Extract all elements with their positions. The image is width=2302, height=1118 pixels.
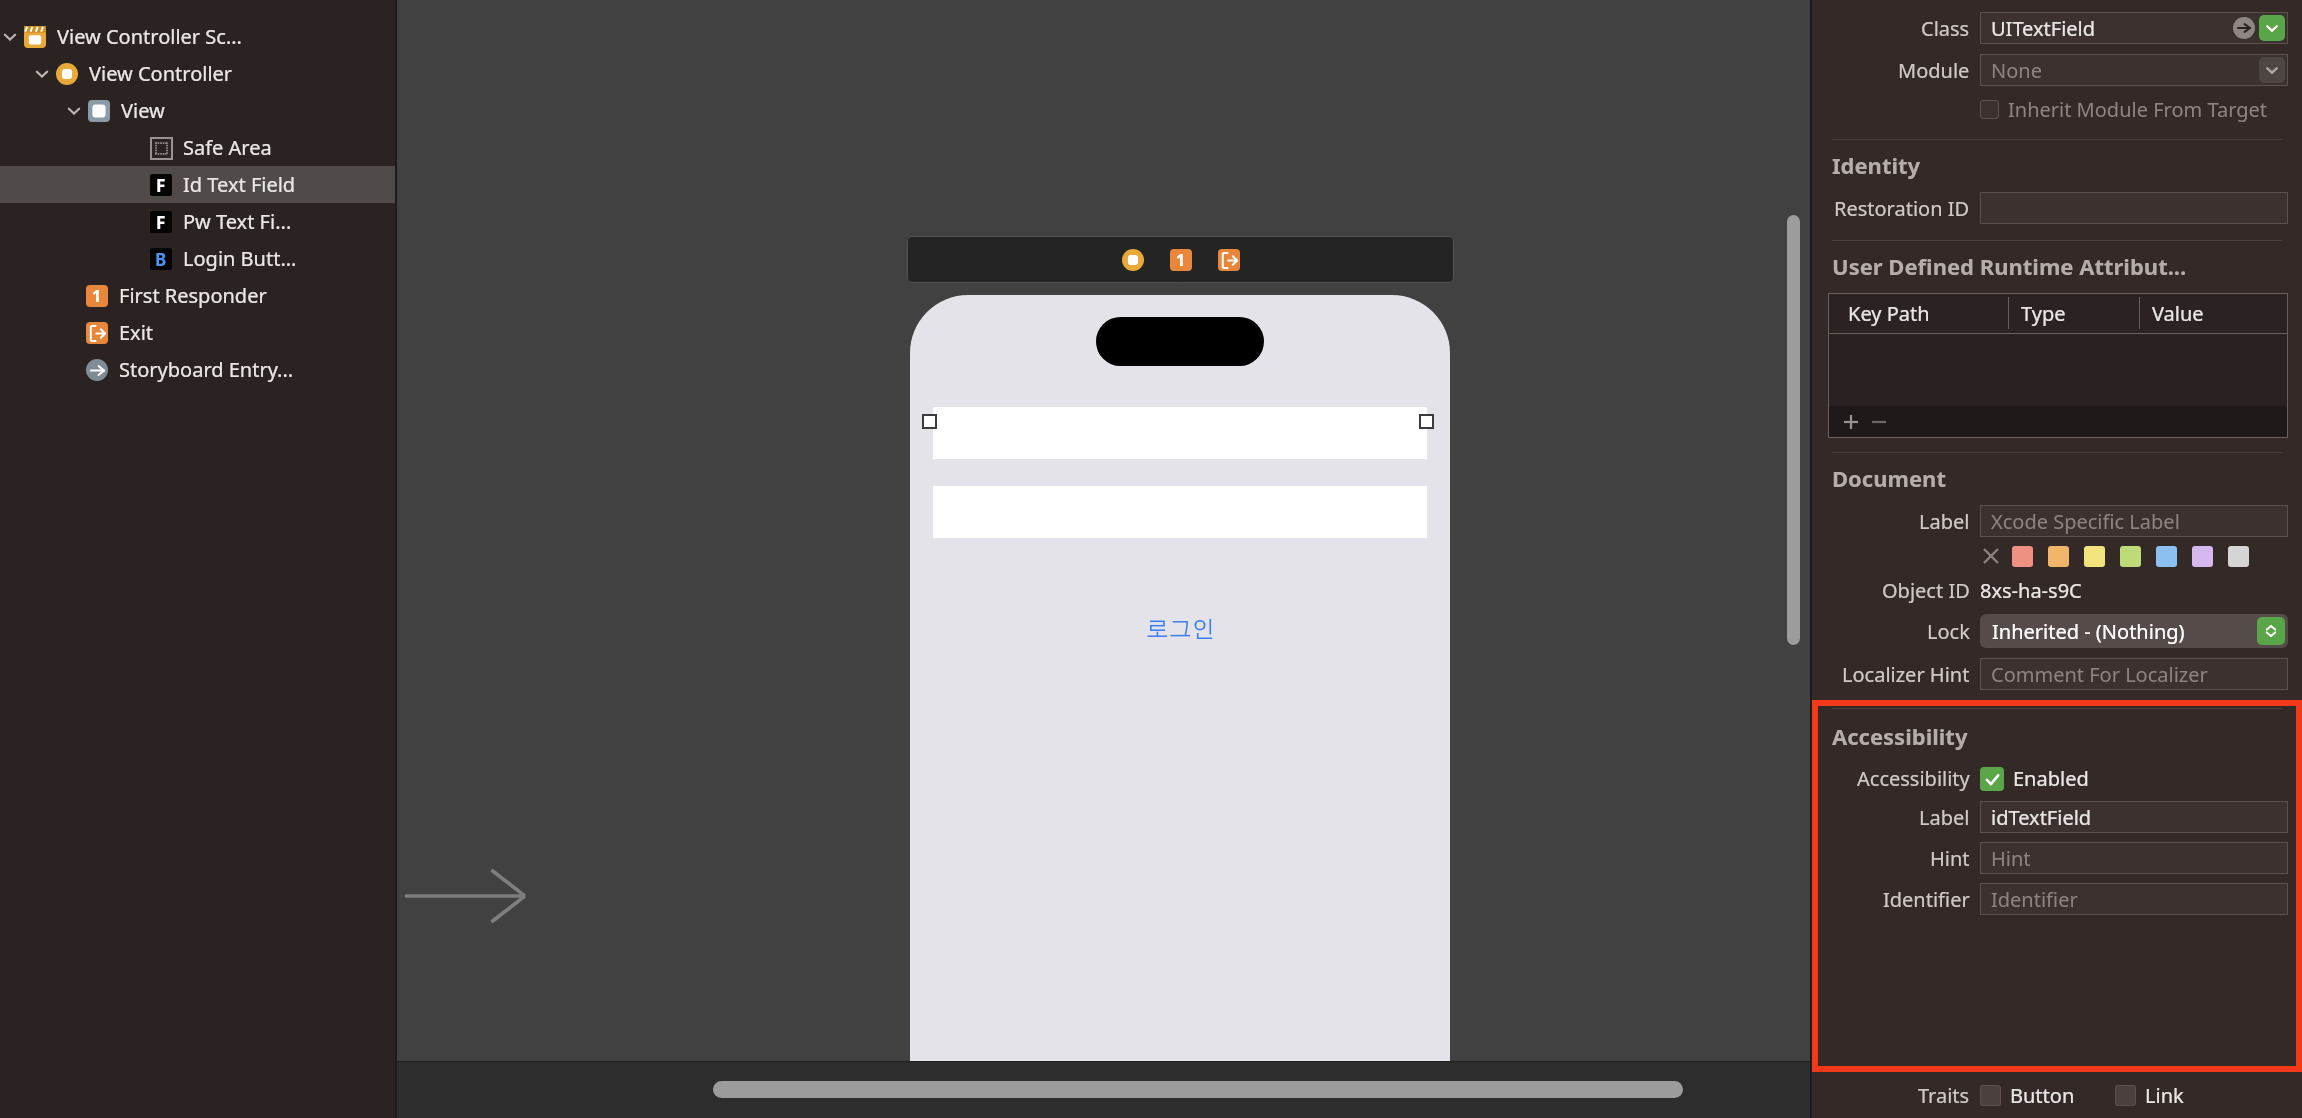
button[interactable]: View Controller	[0, 55, 395, 92]
staticText: Restoration ID	[1834, 195, 1970, 222]
staticText: Hint	[1991, 845, 2031, 872]
button[interactable]: Choose module	[2259, 57, 2285, 83]
button[interactable]: Add attribute	[1840, 411, 1862, 433]
staticText: Class	[1921, 15, 1970, 42]
staticText: View Controller Sc...	[57, 23, 242, 50]
button[interactable]: Link	[2115, 1082, 2184, 1109]
button[interactable]: Inherited - (Nothing)	[1980, 614, 2288, 648]
button[interactable]: Storyboard Entry...	[0, 351, 395, 388]
staticText: Traits	[1918, 1082, 1970, 1109]
staticText: Key Path	[1848, 300, 1930, 327]
staticText: Hint	[1930, 845, 1970, 872]
staticText: 8xs-ha-s9C	[1980, 577, 2082, 604]
staticText: Pw Text Fi...	[183, 208, 292, 235]
staticText: B	[155, 248, 167, 270]
button[interactable]	[2156, 546, 2177, 567]
staticText: Type	[2021, 300, 2066, 327]
button[interactable]: Button	[1980, 1082, 2075, 1109]
button[interactable]: View	[0, 92, 395, 129]
staticText: F	[156, 211, 166, 233]
staticText: Inherited - (Nothing)	[1992, 618, 2185, 645]
button[interactable]: Comment For Localizer	[1980, 658, 2288, 690]
button[interactable]: UITextField	[1980, 12, 2288, 44]
staticText: 1	[92, 285, 102, 307]
staticText: Object ID	[1882, 577, 1970, 604]
button[interactable]: F	[0, 166, 395, 203]
staticText: Identifier	[1991, 886, 2078, 913]
button[interactable]: B	[0, 240, 395, 277]
staticText: UITextField	[1991, 15, 2096, 42]
button[interactable]: F	[0, 203, 395, 240]
button[interactable]: View Controller	[1120, 247, 1146, 273]
button[interactable]: 로그인	[1090, 608, 1270, 648]
staticText: idTextField	[1991, 804, 2092, 831]
staticText: Value	[2152, 300, 2204, 327]
staticText: Localizer Hint	[1842, 661, 1970, 688]
staticText: Button	[2010, 1082, 2075, 1109]
button[interactable]: Identifier	[1980, 883, 2288, 915]
button[interactable]	[933, 407, 1427, 459]
staticText: Storyboard Entry...	[119, 356, 294, 383]
staticText: Module	[1898, 57, 1970, 84]
staticText: Document	[1832, 463, 1946, 493]
staticText: Inherit Module From Target	[2008, 96, 2267, 123]
staticText: Identifier	[1883, 886, 1970, 913]
staticText: 로그인	[1146, 614, 1215, 643]
button[interactable]: Exit	[1216, 247, 1242, 273]
staticText: User Defined Runtime Attribut...	[1832, 251, 2187, 281]
button[interactable]: idTextField	[1980, 801, 2288, 833]
staticText: Accessibility	[1832, 721, 1968, 751]
button[interactable]: 1	[0, 277, 395, 314]
button[interactable]	[1980, 192, 2288, 224]
staticText: Enabled	[2013, 765, 2089, 792]
button[interactable]: No color	[1980, 545, 2002, 567]
button[interactable]: Xcode Specific Label	[1980, 505, 2288, 537]
button[interactable]: Open class	[2233, 17, 2255, 39]
button[interactable]: Choose class	[2259, 15, 2285, 41]
button[interactable]	[1980, 100, 1999, 119]
staticText: View	[121, 97, 165, 124]
staticText: Label	[1919, 508, 1970, 535]
staticText: Label	[1919, 804, 1970, 831]
staticText: First Responder	[119, 282, 267, 309]
button[interactable]: None	[1980, 54, 2288, 86]
staticText: Identity	[1832, 150, 1921, 180]
button[interactable]	[2012, 546, 2033, 567]
staticText: 1	[1176, 249, 1186, 271]
button[interactable]: View Controller Sc...	[0, 18, 395, 55]
staticText: Safe Area	[183, 134, 272, 161]
button[interactable]	[2048, 546, 2069, 567]
button[interactable]: Exit	[0, 314, 395, 351]
button[interactable]	[2084, 546, 2105, 567]
staticText: None	[1991, 57, 2042, 84]
button[interactable]: Enabled	[1980, 765, 2089, 792]
staticText: Lock	[1927, 618, 1970, 645]
button[interactable]	[2192, 546, 2213, 567]
button[interactable]: Safe Area	[0, 129, 395, 166]
staticText: Login Butt...	[183, 245, 297, 272]
staticText: F	[156, 174, 166, 196]
button[interactable]: First Responder	[1168, 247, 1194, 273]
button[interactable]	[2120, 546, 2141, 567]
staticText: Xcode Specific Label	[1991, 508, 2180, 535]
staticText: Accessibility	[1857, 765, 1970, 792]
staticText: Comment For Localizer	[1991, 661, 2208, 688]
staticText: Exit	[119, 319, 154, 346]
button[interactable]: Remove attribute	[1868, 411, 1890, 433]
button[interactable]	[2228, 546, 2249, 567]
button[interactable]: Hint	[1980, 842, 2288, 874]
staticText: Id Text Field	[183, 171, 296, 198]
staticText: View Controller	[89, 60, 233, 87]
staticText: Link	[2145, 1082, 2184, 1109]
